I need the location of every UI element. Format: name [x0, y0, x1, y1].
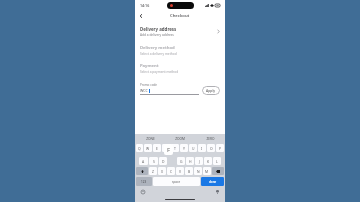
staticText: P — [219, 146, 222, 151]
staticText: G — [180, 159, 183, 164]
button[interactable]: Apply — [202, 86, 220, 95]
staticText: A — [142, 159, 145, 164]
button[interactable]: D — [159, 157, 167, 165]
button[interactable]: V — [176, 167, 184, 175]
button[interactable]: R — [162, 144, 170, 152]
button[interactable]: W — [144, 144, 152, 152]
button[interactable]: ZERO — [195, 134, 225, 144]
staticText: Payment — [140, 63, 159, 69]
staticText: ZONE — [146, 137, 155, 141]
staticText: O — [210, 146, 213, 151]
button[interactable]: G — [177, 157, 185, 165]
staticText: Z — [152, 169, 154, 174]
staticText: C — [170, 169, 173, 174]
button[interactable]: Emoji — [139, 188, 146, 195]
staticText: Delivery method — [140, 45, 175, 51]
button[interactable]: H — [186, 157, 194, 165]
button[interactable]: I — [198, 144, 206, 152]
staticText: E — [156, 146, 158, 151]
button[interactable]: space — [153, 177, 200, 186]
staticText: D — [162, 159, 165, 164]
staticText: R — [165, 146, 168, 151]
button[interactable]: Z — [149, 167, 157, 175]
button[interactable]: T — [171, 144, 179, 152]
button[interactable]: M — [203, 167, 211, 175]
staticText: 14:16 — [140, 3, 150, 8]
button[interactable]: C — [167, 167, 175, 175]
button[interactable]: Y — [180, 144, 188, 152]
staticText: space — [172, 180, 181, 184]
button[interactable]: L — [213, 157, 221, 165]
staticText: ZOOM — [175, 137, 185, 141]
staticText: W — [146, 146, 150, 151]
staticText: U — [192, 146, 195, 151]
button[interactable]: S — [149, 157, 158, 165]
staticText: M — [205, 169, 209, 174]
staticText: Q — [138, 146, 141, 151]
staticText: N — [197, 169, 200, 174]
staticText: Y — [183, 146, 185, 151]
button[interactable]: X — [158, 167, 166, 175]
button[interactable]: Q — [136, 144, 143, 152]
staticText: Apply — [206, 88, 216, 93]
staticText: done — [209, 180, 217, 184]
button[interactable]: ZOOM — [165, 134, 195, 144]
button[interactable]: K — [204, 157, 212, 165]
button[interactable]: Dictation — [214, 188, 221, 195]
staticText: Select a payment method — [140, 70, 179, 74]
button[interactable]: ZONE — [135, 134, 165, 144]
staticText: Delivery address — [140, 26, 177, 32]
button[interactable]: E — [153, 144, 161, 152]
button[interactable]: J — [195, 157, 203, 165]
staticText: ZERO — [206, 137, 215, 141]
button[interactable]: U — [189, 144, 197, 152]
staticText: I — [201, 146, 203, 151]
staticText: Checkout — [170, 13, 190, 19]
staticText: Add a delivery address — [140, 33, 174, 37]
staticText: V — [179, 169, 182, 174]
staticText: T — [174, 146, 176, 151]
staticText: X — [161, 169, 163, 174]
button[interactable]: N — [194, 167, 202, 175]
button[interactable]: Delivery address — [135, 24, 225, 39]
staticText: B — [188, 169, 191, 174]
staticText: 123 — [141, 180, 147, 184]
button[interactable]: done — [201, 177, 224, 186]
button[interactable]: 123 — [136, 177, 152, 186]
button[interactable]: A — [139, 157, 148, 165]
staticText: L — [216, 159, 218, 164]
button[interactable]: B — [185, 167, 193, 175]
button[interactable]: Delivery method — [135, 45, 225, 56]
button[interactable]: Key — [212, 167, 224, 175]
staticText: Promo code — [140, 83, 158, 87]
button[interactable]: P — [216, 144, 224, 152]
button[interactable]: O — [207, 144, 215, 152]
staticText: Select a delivery method — [140, 52, 177, 56]
button[interactable]: Payment — [135, 63, 225, 74]
staticText: K — [207, 159, 210, 164]
button[interactable]: Back — [137, 12, 145, 20]
staticText: H — [189, 159, 192, 164]
staticText: S — [153, 159, 155, 164]
button[interactable]: Key — [136, 167, 148, 175]
staticText: F — [167, 146, 171, 154]
staticText: WCC — [140, 88, 148, 93]
staticText: J — [199, 159, 200, 164]
